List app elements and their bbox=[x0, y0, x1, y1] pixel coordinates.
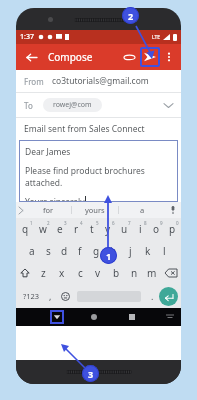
staticText: a bbox=[29, 244, 35, 258]
staticText: j bbox=[129, 244, 132, 258]
staticText: yours bbox=[85, 205, 105, 215]
staticText: 6 bbox=[112, 220, 115, 226]
button[interactable]: u bbox=[116, 218, 132, 240]
staticText: Compose bbox=[48, 50, 93, 64]
staticText: u bbox=[121, 222, 128, 236]
button[interactable]: y bbox=[100, 218, 116, 240]
staticText: 5 bbox=[96, 220, 99, 226]
button[interactable]: e bbox=[51, 218, 68, 240]
staticText: r bbox=[74, 222, 79, 236]
staticText: c bbox=[78, 266, 83, 280]
button[interactable]: Back bbox=[22, 48, 40, 66]
staticText: rowej@com bbox=[53, 100, 92, 110]
button[interactable]: m bbox=[143, 262, 161, 284]
button[interactable]: x bbox=[53, 262, 71, 284]
staticText: 2 bbox=[128, 10, 134, 22]
staticText: m bbox=[147, 266, 157, 280]
staticText: f bbox=[78, 244, 82, 258]
staticText: for bbox=[43, 205, 54, 215]
button[interactable]: r bbox=[68, 218, 84, 240]
button[interactable]: t bbox=[84, 218, 100, 240]
button[interactable]: Send bbox=[140, 47, 160, 67]
staticText: q bbox=[22, 222, 29, 236]
button[interactable]: , bbox=[43, 284, 57, 308]
staticText: o bbox=[153, 222, 160, 236]
staticText: 1 bbox=[106, 250, 112, 262]
button[interactable]: o bbox=[148, 218, 164, 240]
button[interactable]: Home bbox=[87, 310, 101, 324]
button[interactable]: yours bbox=[72, 202, 118, 218]
button[interactable]: Attach file bbox=[120, 48, 138, 66]
button[interactable]: p bbox=[164, 218, 180, 240]
button[interactable]: n bbox=[125, 262, 143, 284]
staticText: 1 bbox=[30, 220, 33, 226]
button[interactable]: h bbox=[105, 240, 122, 262]
button[interactable]: z bbox=[34, 262, 53, 284]
staticText: t bbox=[90, 222, 94, 236]
staticText: co3tutorials@gmail.com bbox=[52, 75, 149, 87]
button[interactable]: s bbox=[40, 240, 56, 262]
button[interactable]: for bbox=[26, 202, 71, 218]
button[interactable]: Emoji bbox=[57, 284, 73, 308]
button[interactable]: l bbox=[156, 240, 173, 262]
staticText: x bbox=[59, 266, 65, 280]
staticText: g bbox=[93, 244, 100, 258]
button[interactable]: q bbox=[17, 218, 34, 240]
staticText: l bbox=[163, 244, 166, 258]
staticText: To bbox=[24, 100, 33, 111]
staticText: 9 bbox=[160, 220, 163, 226]
staticText: 3 bbox=[88, 368, 94, 380]
button[interactable]: j bbox=[122, 240, 139, 262]
button[interactable]: Menu bbox=[163, 310, 177, 324]
button[interactable]: b bbox=[107, 262, 125, 284]
button[interactable]: Email sent from Sales Connect bbox=[24, 118, 181, 140]
staticText: Please find product brochures attached. bbox=[25, 165, 178, 189]
staticText: LTE bbox=[152, 34, 161, 41]
staticText: w bbox=[39, 222, 47, 236]
button[interactable]: . bbox=[145, 284, 159, 308]
button[interactable]: Expand recipients bbox=[161, 98, 175, 112]
button[interactable]: Enter bbox=[159, 287, 178, 306]
staticText: z bbox=[41, 266, 46, 280]
button[interactable]: v bbox=[89, 262, 107, 284]
staticText: 0 bbox=[176, 220, 179, 226]
staticText: ?123 bbox=[23, 291, 40, 301]
staticText: Yours sincerely bbox=[25, 196, 85, 202]
button[interactable]: a bbox=[119, 202, 165, 218]
staticText: . bbox=[151, 290, 154, 302]
button[interactable]: Recents bbox=[125, 310, 139, 324]
button[interactable]: ?123 bbox=[19, 284, 43, 308]
button[interactable]: i bbox=[132, 218, 148, 240]
staticText: v bbox=[95, 266, 101, 280]
button[interactable]: Hide keyboard bbox=[50, 310, 64, 324]
button[interactable]: Dear James bbox=[19, 140, 178, 202]
staticText: n bbox=[131, 266, 138, 280]
staticText: , bbox=[49, 290, 52, 302]
button[interactable]: Backspace bbox=[161, 262, 181, 284]
staticText: 3 bbox=[64, 220, 67, 226]
staticText: From bbox=[24, 76, 44, 87]
button[interactable]: d bbox=[56, 240, 72, 262]
staticText: 1:37 bbox=[20, 32, 34, 42]
button[interactable]: g bbox=[88, 240, 105, 262]
button[interactable]: w bbox=[34, 218, 51, 240]
button[interactable]: c bbox=[71, 262, 89, 284]
staticText: h bbox=[110, 244, 117, 258]
staticText: Dear James bbox=[25, 146, 71, 158]
staticText: b bbox=[113, 266, 120, 280]
button[interactable]: rowej@com bbox=[53, 98, 92, 112]
staticText: 8 bbox=[144, 220, 147, 226]
staticText: s bbox=[46, 244, 51, 258]
button[interactable]: More options bbox=[161, 49, 177, 65]
button[interactable]: Shift bbox=[16, 262, 34, 284]
staticText: y bbox=[105, 222, 111, 236]
staticText: p bbox=[169, 222, 176, 236]
button[interactable]: Voice input bbox=[165, 202, 181, 218]
staticText: i bbox=[139, 222, 142, 236]
staticText: 4 bbox=[80, 220, 83, 226]
staticText: a bbox=[140, 205, 145, 215]
button[interactable]: a bbox=[24, 240, 40, 262]
button[interactable]: k bbox=[139, 240, 156, 262]
button[interactable]: f bbox=[72, 240, 88, 262]
